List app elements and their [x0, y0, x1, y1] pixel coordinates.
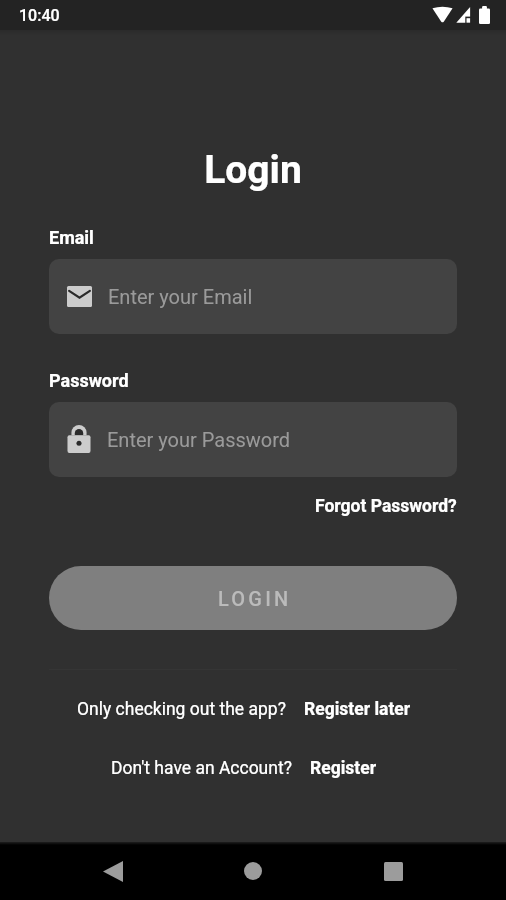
- button[interactable]: Register later: [304, 699, 411, 720]
- staticText: Password: [49, 370, 129, 391]
- button[interactable]: Enter your Password: [49, 402, 457, 477]
- staticText: Register later: [304, 699, 411, 720]
- staticText: LOGIN: [218, 587, 292, 610]
- button[interactable]: LOGIN: [49, 566, 457, 630]
- staticText: Email: [49, 227, 94, 248]
- button[interactable]: Enter your Email: [49, 259, 457, 334]
- staticText: Register: [310, 758, 377, 779]
- button[interactable]: Register: [310, 758, 377, 779]
- staticText: Only checking out the app?: [77, 699, 286, 720]
- staticText: Forgot Password?: [315, 496, 457, 517]
- button[interactable]: Forgot Password?: [315, 496, 457, 517]
- staticText: Login: [49, 147, 457, 193]
- staticText: Enter your Email: [108, 285, 253, 308]
- staticText: Don't have an Account?: [111, 758, 292, 779]
- button[interactable]: Back: [89, 847, 137, 895]
- button[interactable]: Home: [229, 847, 277, 895]
- button[interactable]: Recent apps: [369, 847, 417, 895]
- staticText: Enter your Password: [107, 428, 291, 451]
- staticText: 10:40: [19, 6, 60, 25]
